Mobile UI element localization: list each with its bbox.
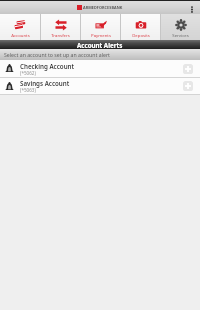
- button[interactable]: Accounts: [0, 14, 40, 40]
- staticText: (*5062): [20, 70, 36, 76]
- staticText: Payments: [91, 32, 111, 38]
- staticText: (*5063): [20, 87, 36, 93]
- button[interactable]: Add alert: [183, 81, 193, 91]
- staticText: Accounts: [11, 32, 30, 38]
- button[interactable]: Deposits: [121, 14, 160, 40]
- button[interactable]: More options: [183, 1, 200, 14]
- staticText: Checking Account: [20, 62, 75, 70]
- button[interactable]: Transfers: [41, 14, 80, 40]
- staticText: Services: [172, 32, 189, 38]
- button[interactable]: Payments: [81, 14, 120, 40]
- staticText: ARMEDFORCESBANK: [83, 5, 123, 10]
- button[interactable]: Savings Account: [0, 78, 200, 94]
- staticText: Savings Account: [20, 79, 70, 87]
- button[interactable]: Checking Account: [0, 60, 200, 77]
- staticText: Select an account to set up an account a…: [4, 51, 110, 58]
- button[interactable]: Add alert: [183, 64, 193, 74]
- staticText: Account Alerts: [77, 41, 123, 49]
- staticText: Transfers: [51, 32, 70, 38]
- button[interactable]: Services: [161, 14, 200, 40]
- staticText: Deposits: [132, 32, 150, 38]
